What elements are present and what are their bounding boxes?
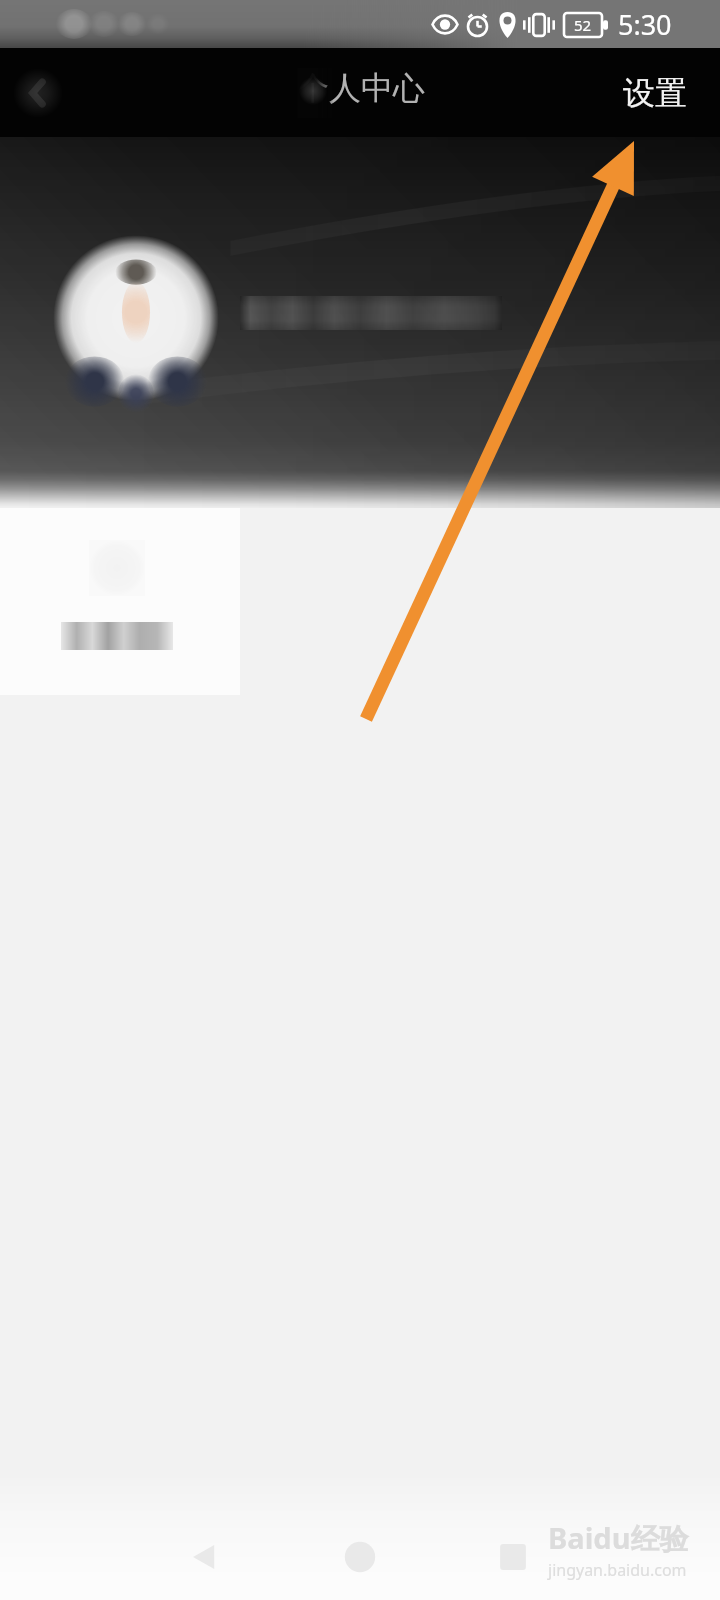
button[interactable]: [0, 508, 240, 695]
button[interactable]: Back: [169, 1521, 241, 1593]
staticText: 52: [574, 15, 592, 35]
staticText: Baidu经验: [548, 1518, 689, 1558]
staticText: 5:30: [618, 6, 672, 43]
staticText: jingyan.baidu.com: [548, 1559, 687, 1581]
button[interactable]: Recent apps: [477, 1521, 549, 1593]
button[interactable]: Home: [324, 1521, 396, 1593]
staticText: 个人中心: [297, 68, 425, 108]
button[interactable]: Back: [0, 48, 76, 137]
button[interactable]: 设置: [597, 48, 720, 137]
button[interactable]: Profile photo: [48, 230, 224, 406]
staticText: 设置: [623, 73, 687, 113]
